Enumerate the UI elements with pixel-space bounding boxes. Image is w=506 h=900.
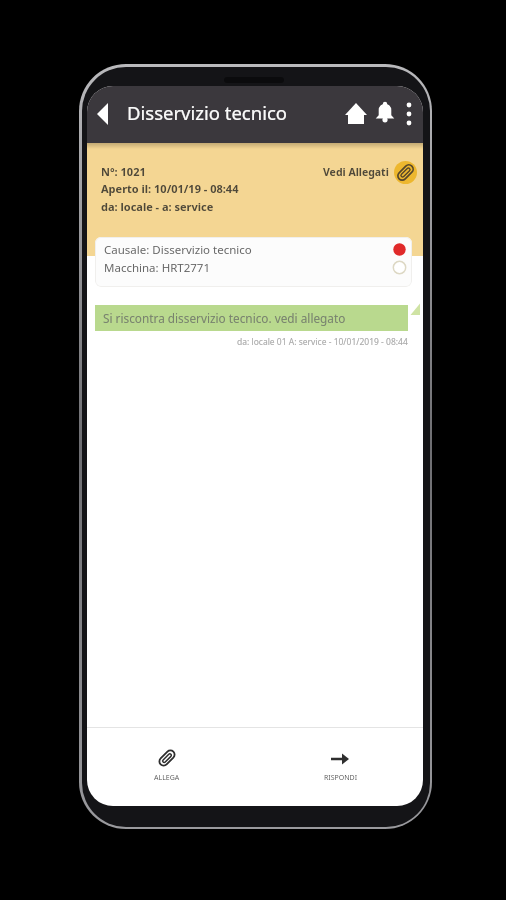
staticText: Vedi Allegati (323, 165, 389, 179)
staticText: Si riscontra disservizio tecnico. vedi a… (103, 310, 346, 326)
staticText: RISPONDI (324, 773, 358, 783)
staticText: Disservizio tecnico (127, 100, 287, 125)
button[interactable]: Causale: Disservizio tecnico (95, 237, 412, 287)
staticText: da: locale 01 A: service - 10/01/2019 - … (237, 336, 408, 348)
staticText: N°: 1021 (101, 164, 146, 179)
staticText: Causale: Disservizio tecnico (104, 242, 252, 257)
button[interactable]: Si riscontra disservizio tecnico. vedi a… (95, 305, 408, 331)
staticText: da: locale - a: service (101, 199, 214, 214)
staticText: Macchina: HRT2771 (104, 260, 211, 275)
button[interactable]: Vedi Allegati (267, 159, 417, 185)
button[interactable] (90, 95, 120, 133)
button[interactable] (399, 95, 419, 133)
button[interactable]: RISPONDI (306, 736, 376, 788)
button[interactable] (338, 95, 374, 133)
button[interactable] (367, 95, 403, 133)
staticText: Aperto il: 10/01/19 - 08:44 (101, 181, 239, 196)
staticText: ALLEGA (154, 773, 180, 783)
button[interactable]: ALLEGA (132, 736, 202, 788)
